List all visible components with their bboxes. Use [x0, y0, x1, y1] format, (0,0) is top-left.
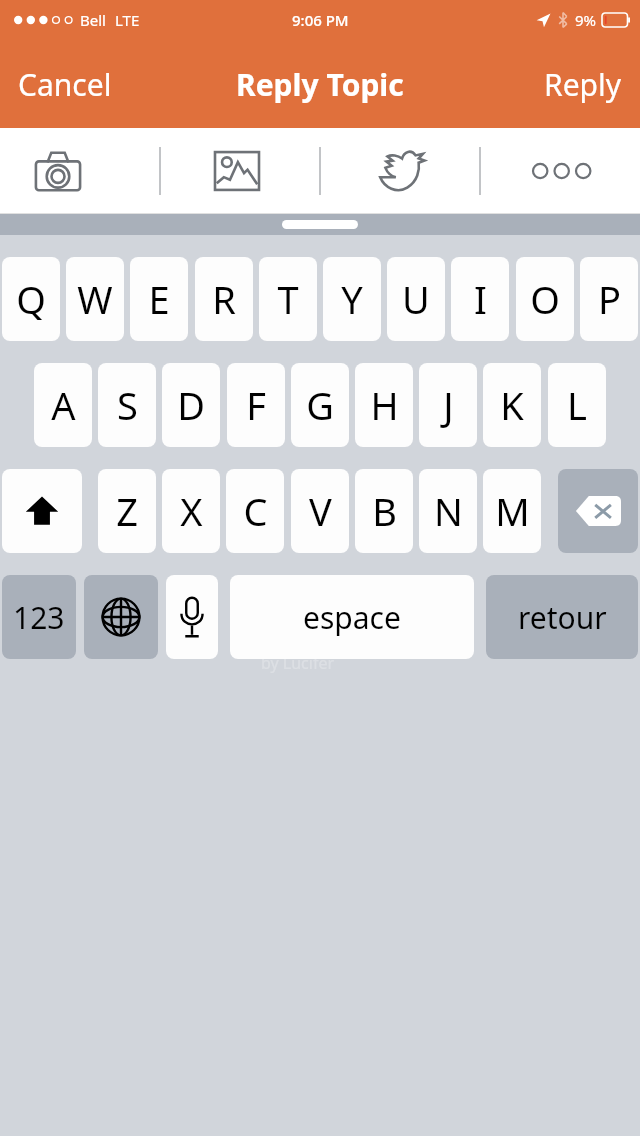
staticText: I: [474, 273, 487, 325]
button[interactable]: retour: [486, 575, 638, 659]
staticText: espace: [303, 597, 401, 638]
staticText: Q: [16, 273, 46, 325]
staticText: H: [370, 379, 399, 431]
button[interactable]: Camera: [30, 143, 86, 199]
staticText: Reply Topic: [236, 64, 404, 105]
staticText: J: [443, 379, 454, 431]
staticText: D: [177, 379, 205, 431]
button[interactable]: E: [130, 257, 188, 341]
button[interactable]: Twitter: [370, 140, 432, 202]
button[interactable]: A: [34, 363, 92, 447]
staticText: V: [309, 485, 332, 537]
button[interactable]: N: [419, 469, 477, 553]
staticText: A: [51, 379, 76, 431]
button[interactable]: H: [355, 363, 413, 447]
staticText: O: [530, 273, 560, 325]
staticText: C: [243, 485, 268, 537]
button[interactable]: T: [259, 257, 317, 341]
staticText: by Lucifer: [261, 652, 335, 674]
staticText: B: [372, 485, 397, 537]
staticText: K: [500, 379, 524, 431]
button[interactable]: J: [419, 363, 477, 447]
staticText: Y: [341, 273, 363, 325]
button[interactable]: Reply: [526, 40, 640, 128]
button[interactable]: I: [451, 257, 509, 341]
staticText: phpBB Gallery: [244, 630, 352, 652]
staticText: T: [277, 273, 299, 325]
staticText: M: [495, 485, 530, 537]
button[interactable]: P: [580, 257, 638, 341]
staticText: X: [180, 485, 203, 537]
button[interactable]: Q: [2, 257, 60, 341]
button[interactable]: X: [162, 469, 220, 553]
staticText: G: [306, 379, 334, 431]
button[interactable]: R: [195, 257, 253, 341]
button[interactable]: Cancel: [0, 40, 130, 128]
button[interactable]: Dictation: [166, 575, 218, 659]
button[interactable]: L: [548, 363, 606, 447]
button[interactable]: W: [66, 257, 124, 341]
button[interactable]: M: [483, 469, 541, 553]
staticText: E: [148, 273, 170, 325]
staticText: Reply: [544, 64, 622, 105]
button[interactable]: Change keyboard: [84, 575, 158, 659]
staticText: retour: [518, 597, 607, 638]
button[interactable]: Photo library: [209, 143, 265, 199]
staticText: Cancel: [18, 64, 112, 105]
button[interactable]: Y: [323, 257, 381, 341]
button[interactable]: D: [162, 363, 220, 447]
button[interactable]: Shift: [2, 469, 82, 553]
staticText: Bell: [80, 10, 106, 30]
staticText: R: [212, 273, 236, 325]
button[interactable]: U: [387, 257, 445, 341]
button[interactable]: G: [291, 363, 349, 447]
staticText: W: [77, 273, 113, 325]
staticText: 9:06 PM: [292, 10, 349, 30]
staticText: F: [246, 379, 266, 431]
button[interactable]: B: [355, 469, 413, 553]
staticText: LTE: [115, 10, 140, 30]
button[interactable]: 123: [2, 575, 76, 659]
button[interactable]: F: [227, 363, 285, 447]
button[interactable]: espace: [230, 575, 474, 659]
staticText: 9%: [575, 10, 597, 30]
button[interactable]: More options: [528, 151, 590, 191]
staticText: Z: [116, 485, 138, 537]
staticText: U: [402, 273, 430, 325]
staticText: P: [598, 273, 621, 325]
staticText: L: [567, 379, 587, 431]
staticText: N: [434, 485, 463, 537]
button[interactable]: Z: [98, 469, 156, 553]
button[interactable]: O: [516, 257, 574, 341]
button[interactable]: S: [98, 363, 156, 447]
staticText: S: [117, 379, 138, 431]
button[interactable]: [282, 220, 358, 229]
staticText: 123: [13, 597, 65, 638]
button[interactable]: C: [226, 469, 284, 553]
button[interactable]: Backspace: [558, 469, 638, 553]
button[interactable]: K: [483, 363, 541, 447]
button[interactable]: V: [291, 469, 349, 553]
